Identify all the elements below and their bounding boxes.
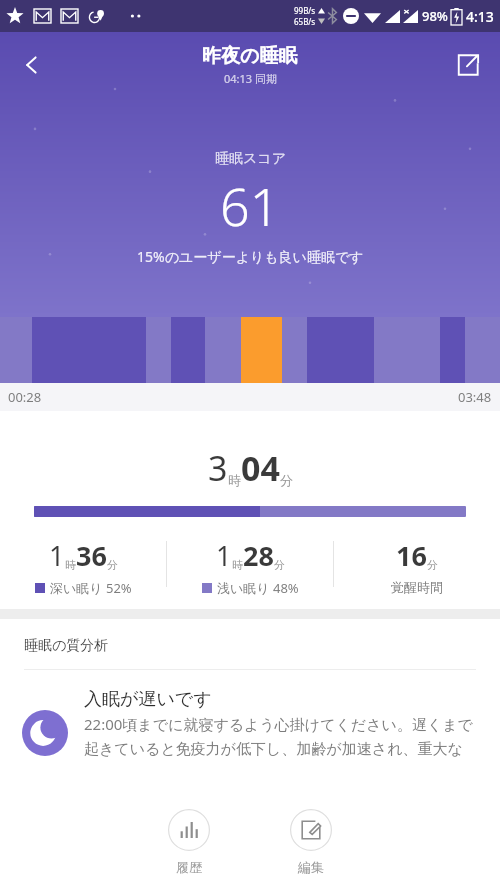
staticText: 昨夜の睡眠 [202, 44, 298, 68]
staticText: 分 [274, 558, 285, 572]
staticText: 分 [427, 558, 438, 572]
button[interactable]: 1 [167, 537, 333, 597]
staticText: 99B/s [294, 5, 316, 16]
staticText: 04 [241, 445, 280, 491]
staticText: 1 [216, 537, 232, 574]
button[interactable]: Share [446, 43, 490, 87]
staticText: 時 [232, 558, 243, 572]
staticText: 睡眠スコア [215, 150, 286, 168]
staticText: 3 [208, 445, 228, 491]
staticText: 睡眠の質分析 [24, 637, 109, 655]
staticText: 28 [243, 537, 274, 574]
staticText: 深い眠り 52% [50, 579, 132, 597]
staticText: 分 [107, 558, 118, 572]
staticText: 覚醒時間 [391, 579, 443, 595]
staticText: 4:13 [466, 7, 494, 26]
staticText: 04:13 同期 [224, 71, 277, 86]
button[interactable]: History [156, 805, 222, 879]
staticText: 分 [280, 472, 293, 488]
staticText: 36 [76, 537, 107, 574]
staticText: 15%のユーザーよりも良い睡眠です [137, 247, 364, 266]
staticText: 浅い眠り 48% [217, 579, 299, 597]
button[interactable]: Edit [278, 805, 344, 879]
staticText: 03:48 [458, 388, 492, 406]
staticText: 履歴 [176, 859, 202, 875]
staticText: 22:00頃までに就寝するよう心掛けてください。遅くまで起きていると免疫力が低下… [84, 714, 486, 758]
button[interactable]: 入眠が遅いです [0, 688, 500, 758]
staticText: 入眠が遅いです [84, 688, 212, 711]
staticText: 1 [49, 537, 65, 574]
staticText: 61 [220, 170, 280, 241]
staticText: 時 [65, 558, 76, 572]
staticText: 65B/s [294, 16, 316, 27]
button[interactable]: 16 [334, 537, 500, 595]
staticText: 00:28 [8, 388, 42, 406]
staticText: 16 [396, 537, 427, 574]
button[interactable]: 1 [0, 537, 166, 597]
button[interactable]: Back [8, 41, 56, 89]
staticText: 編集 [298, 859, 324, 875]
staticText: 98% [422, 7, 448, 25]
staticText: 時 [228, 472, 241, 488]
